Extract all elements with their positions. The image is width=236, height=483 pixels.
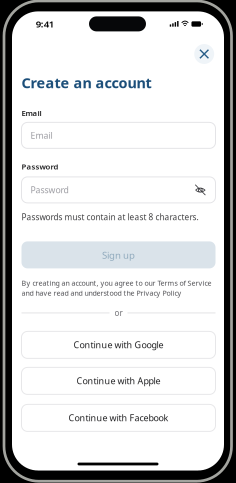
button[interactable]: Continue with Apple xyxy=(21,367,215,394)
staticText: Sign up xyxy=(102,248,135,261)
button[interactable]: Continue with Facebook xyxy=(21,404,215,431)
staticText: By creating an account, you agree to our… xyxy=(21,278,211,288)
staticText: Continue with Facebook xyxy=(68,412,168,424)
staticText: Continue with Apple xyxy=(76,375,160,387)
button[interactable]: Sign up xyxy=(21,241,215,268)
button[interactable]: Close xyxy=(192,42,216,66)
staticText: and have read and understood the Privacy… xyxy=(21,288,181,298)
staticText: Password xyxy=(21,161,58,172)
staticText: Passwords must contain at least 8 charac… xyxy=(21,211,198,223)
staticText: Email xyxy=(30,129,52,141)
staticText: or xyxy=(114,307,122,318)
staticText: Password xyxy=(30,184,68,196)
staticText: 9:41 xyxy=(36,17,54,30)
staticText: Create an account xyxy=(21,73,151,92)
button[interactable]: Continue with Google xyxy=(21,331,215,358)
staticText: Continue with Google xyxy=(73,339,163,351)
staticText: Email xyxy=(21,108,41,118)
